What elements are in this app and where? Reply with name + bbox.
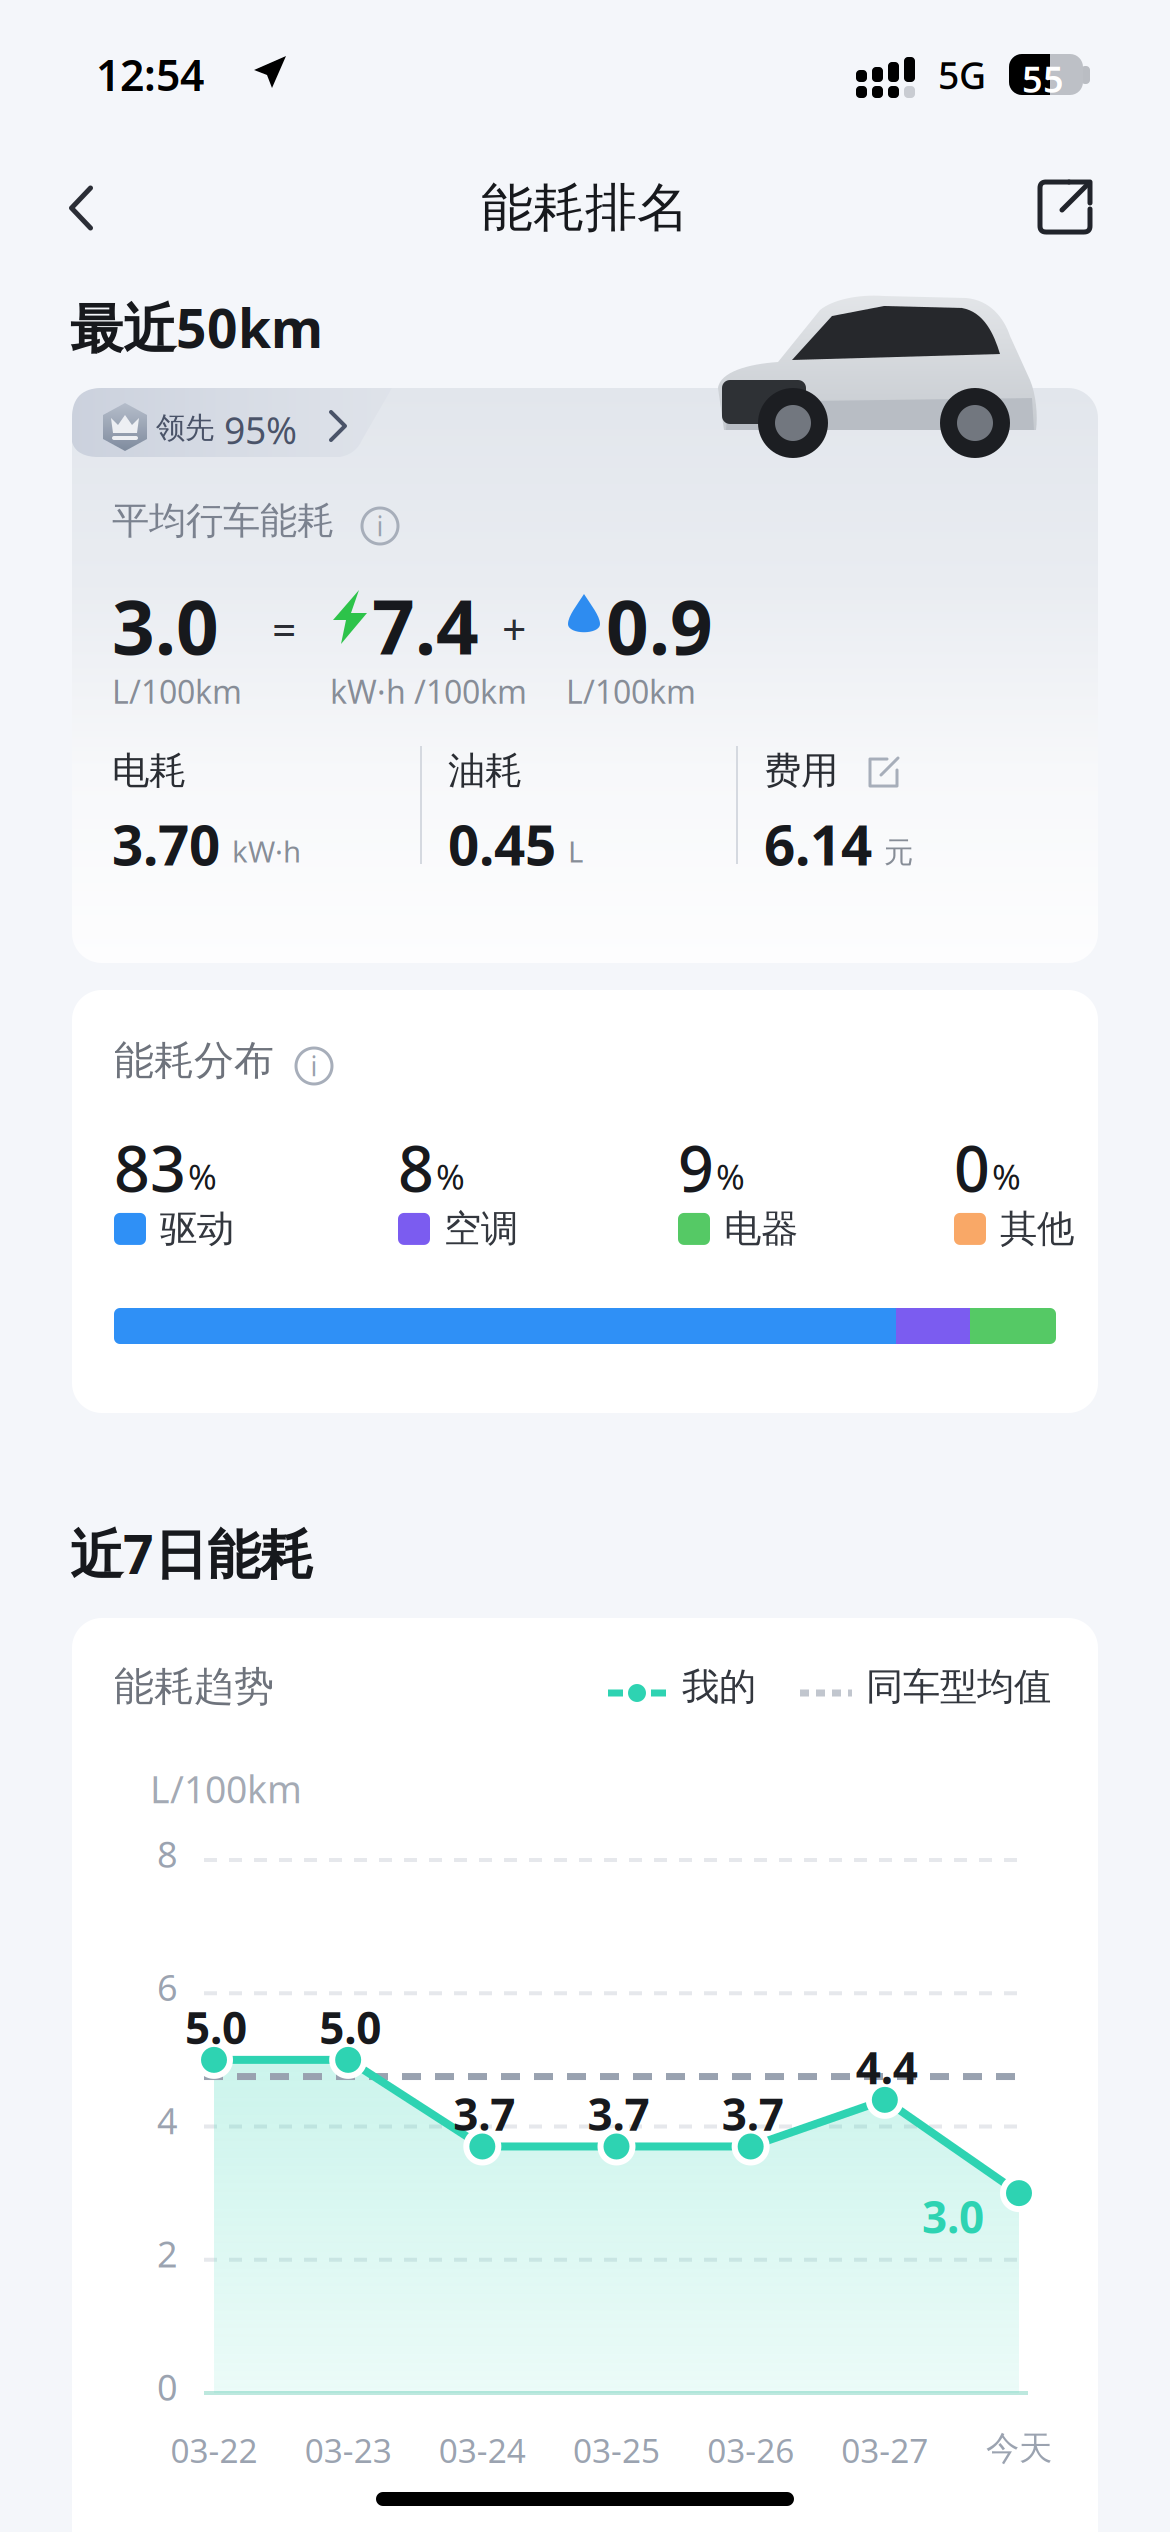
staticText: 元 [884,835,913,871]
staticText: 能耗排名 [481,176,689,240]
staticText: 同车型均值 [866,1664,1051,1710]
staticText: % [188,1153,217,1199]
staticText: L/100km [150,1764,302,1814]
staticText: 能耗趋势 [114,1662,274,1711]
staticText: 3.7 [722,2084,784,2143]
staticText: 5.0 [319,1998,381,2056]
staticText: 03-24 [439,2428,526,2472]
staticText: 5G [938,50,986,100]
staticText: 4 [157,2096,178,2144]
staticText: 电耗 [112,748,186,794]
button[interactable]: 领先 [72,388,402,464]
staticText: 0 [157,2363,178,2411]
staticText: 0 [954,1126,990,1209]
staticText: 0.45 [448,808,556,881]
staticText: 12:54 [96,46,204,103]
staticText: 03-22 [170,2428,257,2472]
staticText: 近7日能耗 [70,1518,313,1589]
staticText: 9 [678,1126,714,1209]
staticText: 2 [157,2230,178,2278]
staticText: 其他 [1000,1206,1074,1252]
staticText: % [716,1153,745,1199]
staticText: L/100km [112,670,242,712]
staticText: 油耗 [448,748,522,794]
staticText: 4.4 [856,2038,918,2096]
staticText: 费用 [764,748,838,794]
staticText: % [436,1153,465,1199]
staticText: 95% [224,405,297,455]
staticText: kW·h [232,832,301,871]
staticText: kW·h /100km [330,670,527,712]
staticText: L [568,832,583,871]
staticText: 3.70 [112,808,220,881]
staticText: 8 [157,1830,178,1878]
staticText: 5.0 [185,1998,247,2056]
staticText: i [310,1048,317,1084]
staticText: 03-26 [707,2428,794,2472]
staticText: 最近50km [70,292,323,363]
button[interactable]: Back [31,160,131,256]
staticText: 0.9 [606,576,713,675]
staticText: 今天 [986,2428,1052,2469]
staticText: 我的 [682,1664,756,1710]
staticText: 55 [1022,55,1064,103]
staticText: 电器 [724,1206,798,1252]
staticText: 7.4 [372,576,479,675]
staticText: 3.7 [587,2084,649,2143]
staticText: 8 [398,1126,434,1209]
staticText: % [992,1153,1021,1199]
staticText: 03-27 [841,2428,928,2472]
staticText: = [272,600,296,657]
staticText: 03-23 [305,2428,392,2472]
staticText: 03-25 [573,2428,660,2472]
staticText: + [502,600,526,657]
staticText: i [376,508,383,544]
staticText: 3.0 [922,2187,984,2245]
staticText: 平均行车能耗 [112,498,334,544]
staticText: 领先 [156,410,214,446]
staticText: 驱动 [160,1206,234,1252]
staticText: 能耗分布 [114,1036,274,1085]
staticText: 3.7 [453,2084,515,2143]
staticText: 83 [114,1126,186,1209]
staticText: L/100km [566,670,696,712]
staticText: 6 [157,1963,178,2011]
staticText: 空调 [444,1206,518,1252]
staticText: 6.14 [764,808,872,881]
staticText: 3.0 [112,576,219,675]
button[interactable]: Share [1015,157,1115,257]
